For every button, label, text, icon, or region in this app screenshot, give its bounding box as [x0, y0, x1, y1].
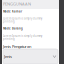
- button[interactable]: Mode Barang: [3, 26, 58, 44]
- staticText: Mode Barang: [3, 27, 23, 30]
- button[interactable]: Jenis: [3, 49, 58, 64]
- staticText: PENGGUNAAN: [3, 1, 31, 6]
- staticText: printing: [3, 20, 15, 23]
- staticText: Mode Kamar: [3, 10, 22, 13]
- button[interactable]: Mode Kamar: [3, 9, 58, 26]
- staticText: Jenis: [4, 54, 12, 59]
- staticText: printing: [3, 37, 15, 41]
- staticText: Lorem Ipsum is simply dummy: [3, 17, 42, 20]
- staticText: Lorem Ipsum is simply dummy: [3, 34, 42, 38]
- staticText: Jenis Pengaturan: [3, 44, 31, 49]
